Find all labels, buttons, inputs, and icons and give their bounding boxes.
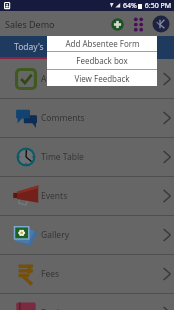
staticText: Sales Demo: [5, 18, 55, 30]
staticText: Events: [41, 190, 68, 202]
button[interactable]: Feedback box: [47, 52, 157, 69]
button[interactable]: Today's: [0, 36, 58, 57]
staticText: Today's: [14, 41, 44, 53]
button[interactable]: Events: [0, 177, 174, 215]
button[interactable]: Profile: [152, 15, 170, 33]
staticText: Attendance: [41, 73, 87, 85]
button[interactable]: Gallery: [0, 216, 174, 254]
staticText: Time Table: [41, 151, 84, 163]
button[interactable]: Apps: [131, 17, 145, 31]
button[interactable]: Add Absentee Form: [47, 36, 157, 51]
button[interactable]: View Feedback: [47, 70, 157, 86]
staticText: View Feedback: [74, 73, 130, 84]
button[interactable]: Books: [0, 294, 174, 310]
button[interactable]: Attendance: [0, 60, 174, 98]
staticText: Add Absentee Form: [65, 38, 140, 49]
staticText: Comments: [41, 112, 85, 124]
staticText: 64%: [123, 1, 137, 11]
staticText: Gallery: [41, 229, 69, 241]
button[interactable]: Fees: [0, 255, 174, 293]
button[interactable]: Time Table: [0, 138, 174, 176]
staticText: Fees: [41, 268, 60, 280]
staticText: Books: [41, 307, 66, 310]
button[interactable]: Add: [110, 17, 124, 31]
button[interactable]: Comments: [0, 99, 174, 137]
staticText: Feedback box: [76, 55, 128, 66]
staticText: 6:50 PM: [143, 1, 172, 11]
